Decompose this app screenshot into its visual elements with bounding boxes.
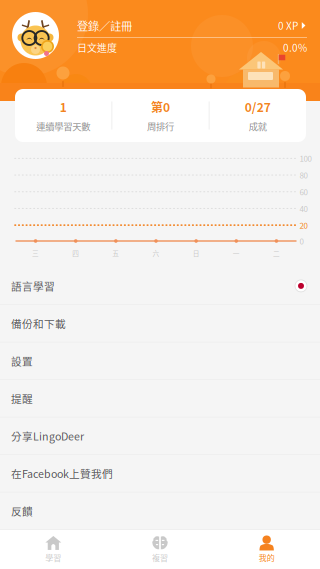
staticText: 複習 xyxy=(152,552,168,563)
staticText: 一 xyxy=(233,248,240,258)
staticText: 六 xyxy=(152,248,159,258)
staticText: 周排行 xyxy=(147,119,174,133)
button[interactable]: 備份和下載 xyxy=(0,305,320,342)
staticText: 0 XP xyxy=(278,18,298,33)
staticText: 成就 xyxy=(249,119,267,133)
staticText: 四 xyxy=(72,248,79,258)
staticText: 20 xyxy=(299,219,307,231)
button[interactable]: 登錄／註冊 xyxy=(77,17,132,34)
button[interactable]: 設置 xyxy=(0,342,320,380)
staticText: 學習 xyxy=(45,552,61,563)
staticText: 1 xyxy=(60,98,67,115)
staticText: 提醒 xyxy=(11,391,33,406)
button[interactable]: 我的 xyxy=(213,530,320,569)
staticText: 二 xyxy=(273,248,280,258)
staticText: 0.0% xyxy=(283,40,307,55)
staticText: 備份和下載 xyxy=(11,316,66,331)
button[interactable]: 1 xyxy=(15,89,111,142)
staticText: 我的 xyxy=(259,552,275,563)
button[interactable]: 反饋 xyxy=(0,492,320,530)
staticText: 在Facebook上贊我們 xyxy=(11,466,113,481)
staticText: 40 xyxy=(299,203,307,214)
button[interactable]: 在Facebook上贊我們 xyxy=(0,455,320,492)
button[interactable]: 複習 xyxy=(107,530,213,569)
staticText: 反饋 xyxy=(11,503,33,519)
staticText: 五 xyxy=(112,248,119,258)
staticText: 日文進度 xyxy=(77,40,117,55)
staticText: 語言學習 xyxy=(11,278,55,294)
staticText: 日 xyxy=(193,248,200,258)
staticText: 60 xyxy=(299,186,307,198)
button[interactable]: 語言學習 xyxy=(0,267,320,305)
staticText: 登錄／註冊 xyxy=(77,17,132,34)
button[interactable]: 0/27 xyxy=(209,89,306,142)
button[interactable]: 學習 xyxy=(0,530,107,569)
button[interactable]: 分享LingoDeer xyxy=(0,417,320,455)
staticText: 100 xyxy=(299,153,311,164)
staticText: 三 xyxy=(32,248,39,258)
button[interactable]: 提醒 xyxy=(0,380,320,417)
staticText: 0 xyxy=(299,235,303,247)
staticText: 第0 xyxy=(151,98,170,115)
staticText: 分享LingoDeer xyxy=(11,428,84,444)
staticText: 80 xyxy=(299,169,307,181)
button[interactable]: 第0 xyxy=(112,89,209,142)
button[interactable]: 0 XP xyxy=(278,18,307,33)
staticText: 設置 xyxy=(11,353,33,369)
staticText: 0/27 xyxy=(245,98,271,115)
staticText: 連續學習天數 xyxy=(36,119,90,133)
